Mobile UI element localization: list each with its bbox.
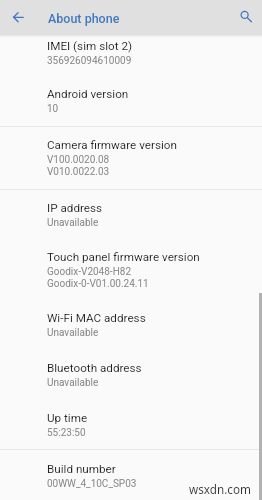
button[interactable] [0,33,262,83]
button[interactable] [0,237,262,299]
button[interactable] [0,349,262,400]
staticText: IMEI (sim slot 2) [47,39,133,53]
button[interactable] [0,127,262,189]
staticText: Touch panel firmware version [47,250,200,264]
staticText: Up time [47,411,88,425]
staticText: 356926094610009 [47,55,132,67]
staticText: wsxdn.com [189,481,251,497]
staticText: About phone [48,11,120,26]
staticText: Unavailable [47,377,99,389]
staticText: 00WW_4_10C_SP03 [47,478,137,490]
button[interactable]: Navigate up [5,4,31,30]
staticText: Goodix-V2048-H82 [47,266,131,278]
button[interactable] [0,190,262,238]
button[interactable] [0,83,262,126]
staticText: IP address [47,201,103,215]
staticText: V100.0020.08 [47,154,110,166]
staticText: 55:23:50 [47,427,86,439]
button[interactable]: Search [232,4,258,30]
staticText: Unavailable [47,327,99,339]
button[interactable] [0,450,262,500]
staticText: Unavailable [47,217,99,229]
button[interactable] [0,299,262,349]
staticText: Goodix-0-V01.00.24.11 [47,278,149,290]
button[interactable] [0,400,262,449]
staticText: 10 [47,103,59,115]
staticText: V010.0022.03 [47,166,110,178]
staticText: Wi-Fi MAC address [47,311,146,325]
staticText: Build number [47,462,116,476]
staticText: Android version [47,87,129,101]
staticText: Bluetooth address [47,361,142,375]
staticText: Camera firmware version [47,138,177,152]
